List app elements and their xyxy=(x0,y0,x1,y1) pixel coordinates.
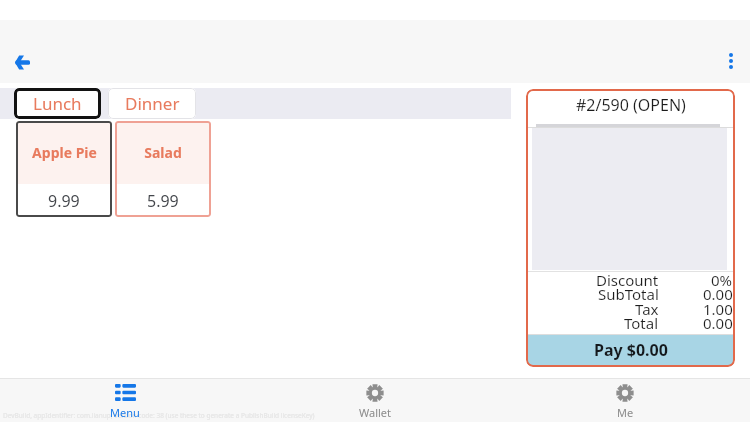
staticText: 9.99 xyxy=(48,190,80,212)
staticText: 5.99 xyxy=(147,190,179,212)
button[interactable]: More options xyxy=(717,47,745,75)
button[interactable]: Back xyxy=(8,48,36,76)
staticText: Lunch xyxy=(33,92,82,115)
button[interactable]: Apple Pie xyxy=(16,121,112,217)
button[interactable]: Lunch xyxy=(14,88,101,119)
staticText: 0.00 xyxy=(703,284,733,304)
staticText: SubTotal xyxy=(598,284,659,304)
button[interactable]: Pay $0.00 xyxy=(528,335,733,365)
staticText: Menu xyxy=(110,405,140,420)
button[interactable]: Dinner xyxy=(108,88,196,119)
staticText: 1.00 xyxy=(703,299,733,319)
staticText: Apple Pie xyxy=(32,143,97,162)
button[interactable]: Salad xyxy=(115,121,211,217)
button[interactable]: Menu xyxy=(0,378,250,422)
staticText: Tax xyxy=(635,299,659,319)
staticText: Discount xyxy=(596,270,659,290)
staticText: #2/590 (OPEN) xyxy=(576,94,686,116)
staticText: Salad xyxy=(144,143,182,162)
button[interactable]: Me xyxy=(500,378,750,422)
staticText: 0.00 xyxy=(703,313,733,333)
staticText: Total xyxy=(624,313,659,333)
staticText: DevBuild, appIdentifier: com.lianup, ver… xyxy=(3,411,315,420)
staticText: Dinner xyxy=(125,92,180,115)
button[interactable]: Wallet xyxy=(250,378,500,422)
staticText: Wallet xyxy=(359,405,392,420)
staticText: 0% xyxy=(711,270,733,290)
staticText: Me xyxy=(617,405,634,420)
staticText: Pay $0.00 xyxy=(594,339,668,361)
